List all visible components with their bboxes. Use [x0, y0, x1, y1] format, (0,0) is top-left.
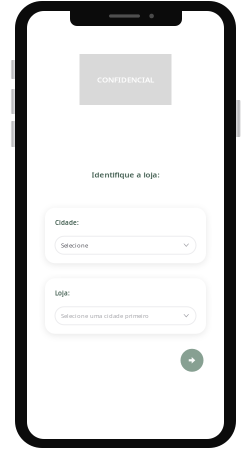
staticText: Selecione uma cidade primeiro	[61, 312, 149, 320]
staticText: Selecione	[61, 241, 88, 249]
button[interactable]: Selecione uma cidade primeiro	[55, 307, 196, 325]
button[interactable]: Selecione	[55, 236, 196, 254]
staticText: Identifique a loja:	[91, 169, 159, 180]
button[interactable]: Avançar	[180, 349, 203, 372]
staticText: CONFIDENCIAL	[97, 74, 154, 85]
staticText: Cidade:	[55, 218, 79, 227]
staticText: Loja:	[55, 289, 70, 297]
